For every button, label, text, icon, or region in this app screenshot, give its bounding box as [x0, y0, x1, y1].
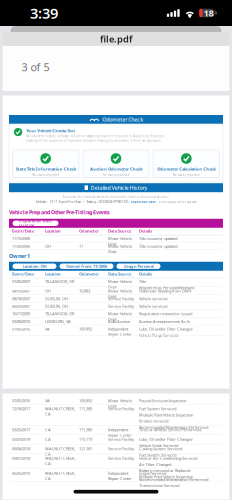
staticText: VA [45, 326, 50, 332]
staticText: No issues reported [32, 173, 59, 177]
staticText: Location [45, 271, 61, 277]
staticText: Motor Vehicle Dept [108, 288, 132, 299]
staticText: Vehicle serviced [139, 296, 167, 301]
staticText: 3 of 5 [21, 60, 49, 74]
staticText: 3:39 [30, 3, 58, 23]
staticText: Lube, Oil and/or Filter Changed [139, 437, 192, 442]
staticText: 109,892 [79, 326, 92, 332]
staticText: Event/Date [12, 271, 34, 277]
staticText: Data Source [108, 228, 131, 234]
staticText: 2017 Toyota Prius Base • Tracking: LTZ4N… [49, 200, 128, 204]
staticText: 07/05/2016 [12, 398, 30, 403]
staticText: Title issued or updated [139, 236, 177, 241]
staticText: 121,181 [79, 446, 92, 451]
staticText: Details [139, 228, 152, 234]
staticText: Motor Vehicle Dept [108, 236, 132, 246]
staticText: Service Facility [108, 437, 134, 442]
staticText: No issues reported [102, 173, 129, 177]
staticText: Service Facility [108, 456, 134, 461]
staticText: Vehicle Fluids Serviced [139, 443, 178, 448]
staticText: Air Filter Changed [139, 462, 171, 467]
staticText: 115,119 [79, 437, 92, 442]
staticText: WALNUT CREEK, CA [45, 456, 75, 466]
staticText: 08/18/2007 [12, 296, 30, 301]
staticText: 12/18/2017 [12, 406, 30, 411]
staticText: 18 [204, 7, 214, 19]
staticText: DUBLIN, OH [45, 296, 68, 301]
staticText: Report Run Date: [130, 200, 156, 204]
staticText: 06/26/2019 [12, 471, 30, 476]
staticText: Cooling System Serviced [139, 446, 182, 451]
staticText: CA [45, 437, 51, 442]
staticText: Odometer Calculation Check [157, 166, 215, 171]
staticText: Motor Vehicle Dept [108, 311, 132, 322]
staticText: 06/29/2007 [12, 304, 30, 309]
staticText: Transmission Serviced [139, 483, 179, 488]
staticText: Auto Auction [108, 319, 130, 324]
staticText: Independent Repair Center [108, 427, 132, 438]
staticText: Vehicle: [35, 200, 47, 204]
staticText: Usage: Personal [123, 264, 153, 269]
staticText: Motor Vehicle Dept [108, 398, 132, 409]
staticText: Auction Odometer Check [90, 166, 142, 171]
staticText: Title [139, 279, 146, 284]
staticText: 07/31/2020 09:57:44 EDT [158, 200, 196, 204]
staticText: Independent Repair Center [108, 471, 132, 481]
staticText: 03/08/2010 [12, 319, 30, 324]
staticText: Engine Serviced [139, 471, 166, 476]
staticText: WALNUT CREEK, CA [45, 406, 75, 417]
staticText: Motor Vehicle Dept [108, 279, 132, 289]
staticText: Preparation Date: 11/15/06 [18, 218, 52, 229]
staticText: Data Source [108, 271, 131, 277]
staticText: Registered as Personal/Renewed [139, 285, 194, 290]
staticText: Title issued or updated [139, 243, 177, 249]
staticText: Location: OH [22, 264, 46, 269]
staticText: Owner 1 [9, 252, 30, 260]
staticText: LEESBURG, VA [45, 319, 71, 324]
staticText: 06/04/2018 [12, 446, 30, 451]
staticText: Your Vehicle Checks Out [26, 128, 75, 133]
staticText: DUBLIN, OH [45, 304, 68, 309]
staticText: Vehicle serviced [139, 304, 167, 309]
staticText: Odometer Check [102, 116, 143, 123]
staticText: WALNUT CREEK, CA [45, 471, 75, 481]
staticText: 10,883 [79, 288, 90, 294]
staticText: Service Facility [108, 446, 134, 451]
staticText: Service Facility [108, 406, 134, 411]
staticText: Auction Announcement: As Is [139, 319, 190, 324]
staticText: 08/10/2007 [12, 288, 30, 294]
staticText: VA [45, 398, 50, 403]
staticText: Owned From: 11/2006 [66, 264, 107, 269]
staticText: Event/Date [12, 228, 34, 234]
staticText: 10/17/2009 [12, 311, 30, 316]
staticText: CA [45, 427, 51, 432]
staticText: Multiple Point Vehicle Inspection [139, 474, 193, 479]
staticText: 11/15/2006 [12, 236, 30, 241]
staticText: 111,385 [79, 406, 92, 411]
staticText: 03/29/2018 [12, 437, 30, 442]
staticText: Vehicle Prep and Other Pre-Titling Event… [9, 209, 110, 216]
staticText: OH [45, 243, 51, 249]
staticText: Multiple Point Vehicle Inspection [139, 412, 193, 417]
staticText: No odometer brands, rollbacks, rollover … [26, 134, 164, 138]
staticText: Brakes serviced [139, 418, 168, 424]
staticText: Independent Repair Center [108, 326, 132, 337]
staticText: Recommended Maintenance Performed [139, 477, 208, 482]
staticText: Below are the historical events for this… [62, 195, 169, 199]
staticText: Detailed Vehicle History [90, 184, 147, 191]
staticText: Motor Vehicle Dept [108, 243, 132, 254]
staticText: 03/26/2017 [12, 427, 30, 432]
staticText: Fuel System Serviced [139, 452, 176, 457]
staticText: Registration renewed or issued [139, 311, 192, 316]
staticText: State Title Information Check [16, 166, 76, 171]
staticText: Service Facility [108, 296, 134, 301]
staticText: Fuel System Serviced [139, 406, 176, 411]
staticText: Odometer [79, 228, 99, 234]
staticText: 11 [79, 243, 83, 249]
staticText: 09/01/2018 [12, 456, 30, 461]
staticText: Recommended Maintenance Performed [139, 424, 208, 430]
staticText: Lube, Oil and/or Filter Changed [139, 326, 192, 332]
staticText: 01/06/2007 [12, 279, 30, 284]
staticText: TILLAMOOK, OR [45, 279, 74, 284]
staticText: Passed Emission Inspection [139, 398, 186, 403]
